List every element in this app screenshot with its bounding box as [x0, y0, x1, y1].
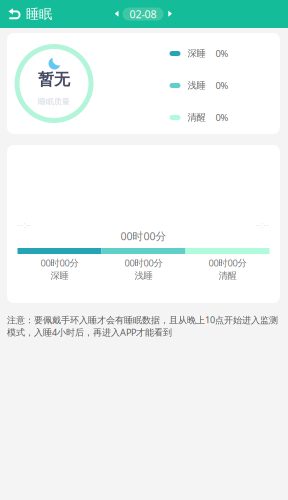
staticText: 00时00分: [124, 257, 162, 269]
staticText: 浅睡: [187, 80, 205, 91]
staticText: 0%: [215, 79, 228, 92]
staticText: 清醒: [187, 112, 205, 123]
staticText: 睡眠: [26, 6, 52, 22]
staticText: 深睡: [50, 270, 68, 281]
staticText: 00时00分: [40, 257, 78, 269]
button[interactable]: Previous day: [111, 3, 123, 25]
staticText: --:--: [255, 220, 269, 230]
staticText: 清醒: [218, 270, 236, 281]
staticText: 02-08: [129, 7, 156, 21]
staticText: 0%: [215, 47, 228, 60]
staticText: 00时00分: [208, 257, 246, 269]
staticText: 深睡: [187, 48, 205, 59]
staticText: 注意：要佩戴手环入睡才会有睡眠数据，且从晚上10点开始进入监测模式，入睡4小时后…: [7, 314, 278, 338]
button[interactable]: Next day: [164, 3, 176, 25]
staticText: 睡眠质量: [38, 97, 70, 106]
button[interactable]: Back: [2, 0, 28, 28]
staticText: 浅睡: [134, 270, 152, 281]
staticText: 00时00分: [120, 229, 166, 243]
staticText: 0%: [215, 111, 228, 124]
staticText: 暂无: [38, 70, 70, 89]
button[interactable]: 02-08: [122, 7, 163, 20]
staticText: --:--: [17, 220, 31, 230]
